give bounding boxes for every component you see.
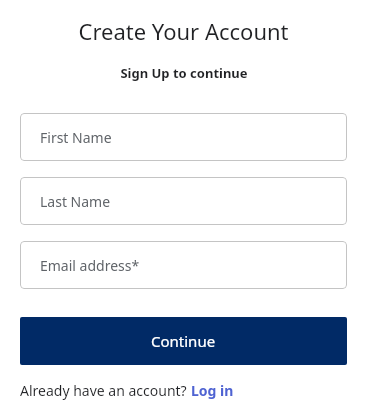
staticText: Create Your Account [78,16,289,46]
staticText: First Name [40,128,112,147]
button[interactable]: Continue [20,317,347,365]
staticText: Continue [151,331,216,351]
button[interactable]: Email address* [20,241,347,289]
staticText: Sign Up to continue [120,64,248,82]
staticText: Already have an account? [20,381,191,400]
button[interactable]: Log in [191,381,234,400]
button[interactable]: Last Name [20,177,347,225]
button[interactable]: First Name [20,113,347,161]
staticText: Log in [191,381,234,400]
staticText: Email address* [40,256,140,275]
staticText: Last Name [40,192,111,211]
